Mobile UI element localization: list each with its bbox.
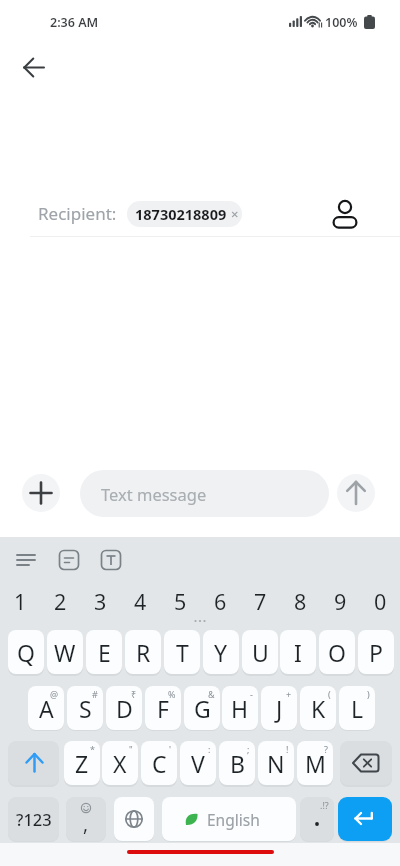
staticText: I: [294, 637, 302, 668]
button[interactable]: .!?: [300, 797, 334, 841]
staticText: ?: [324, 743, 328, 755]
button[interactable]: 2: [40, 587, 80, 615]
button[interactable]: [162, 797, 296, 841]
staticText: %: [168, 688, 176, 700]
staticText: D: [116, 693, 133, 724]
staticText: 3: [94, 587, 107, 615]
button[interactable]: Text message: [80, 470, 329, 517]
staticText: !: [286, 743, 289, 755]
button[interactable]: [18, 56, 52, 80]
staticText: Z: [75, 748, 89, 779]
staticText: S: [79, 693, 92, 724]
staticText: J: [276, 693, 283, 724]
staticText: 5: [174, 587, 187, 615]
button[interactable]: B: [219, 741, 255, 785]
staticText: ': [169, 743, 172, 755]
staticText: 7: [254, 587, 267, 615]
button[interactable]: O: [319, 630, 355, 674]
staticText: &: [208, 688, 215, 700]
staticText: 2:36 AM: [50, 14, 99, 31]
button[interactable]: K: [300, 686, 336, 730]
button[interactable]: Y: [203, 630, 239, 674]
button[interactable]: 3: [80, 587, 120, 615]
staticText: ;: [247, 743, 250, 755]
staticText: U: [252, 637, 269, 668]
button[interactable]: A: [28, 686, 64, 730]
staticText: W: [54, 637, 76, 668]
staticText: Y: [214, 637, 228, 668]
button[interactable]: ?123: [8, 797, 59, 841]
button[interactable]: J: [261, 686, 297, 730]
staticText: ₹: [131, 688, 137, 700]
button[interactable]: G: [184, 686, 220, 730]
staticText: V: [191, 748, 205, 779]
staticText: Q: [17, 637, 35, 668]
staticText: .!?: [320, 799, 329, 811]
staticText: @: [50, 688, 59, 700]
staticText: C: [152, 748, 167, 779]
staticText: Recipient:: [38, 202, 117, 224]
button[interactable]: U: [242, 630, 278, 674]
button[interactable]: [114, 797, 154, 841]
button[interactable]: W: [47, 630, 83, 674]
button[interactable]: R: [125, 630, 161, 674]
button[interactable]: 9: [320, 587, 360, 615]
button[interactable]: M: [297, 741, 333, 785]
button[interactable]: 0: [360, 587, 400, 615]
staticText: 18730218809: [135, 204, 227, 224]
button[interactable]: 8: [280, 587, 320, 615]
button[interactable]: [66, 797, 106, 841]
staticText: X: [113, 748, 127, 779]
button[interactable]: [100, 549, 122, 571]
button[interactable]: [22, 474, 60, 512]
button[interactable]: 5: [160, 587, 200, 615]
button[interactable]: [338, 797, 392, 841]
button[interactable]: [337, 474, 375, 512]
button[interactable]: [340, 741, 392, 785]
button[interactable]: D: [106, 686, 142, 730]
staticText: N: [267, 748, 285, 779]
staticText: 6: [214, 587, 227, 615]
button[interactable]: P: [358, 630, 394, 674]
staticText: E: [98, 637, 111, 668]
staticText: O: [328, 637, 346, 668]
staticText: T: [176, 637, 189, 668]
staticText: ?123: [16, 808, 52, 830]
button[interactable]: [8, 741, 59, 785]
button[interactable]: L: [339, 686, 375, 730]
button[interactable]: [332, 197, 358, 230]
button[interactable]: I: [280, 630, 316, 674]
staticText: P: [369, 637, 383, 668]
staticText: ×: [231, 205, 239, 223]
button[interactable]: Z: [64, 741, 100, 785]
button[interactable]: T: [164, 630, 200, 674]
staticText: 4: [134, 587, 147, 615]
button[interactable]: S: [67, 686, 103, 730]
button[interactable]: V: [180, 741, 216, 785]
button[interactable]: [58, 549, 80, 571]
button[interactable]: Q: [8, 630, 44, 674]
button[interactable]: 18730218809: [127, 201, 242, 227]
button[interactable]: E: [86, 630, 122, 674]
staticText: 1: [14, 587, 27, 615]
button[interactable]: English: [162, 797, 296, 841]
button[interactable]: 4: [120, 587, 160, 615]
staticText: +: [286, 688, 292, 700]
staticText: K: [311, 693, 326, 724]
button[interactable]: 1: [0, 587, 40, 615]
button[interactable]: [16, 549, 38, 571]
staticText: ": [129, 743, 133, 755]
button[interactable]: H: [222, 686, 258, 730]
button[interactable]: N: [258, 741, 294, 785]
staticText: 100%: [325, 14, 358, 31]
staticText: G: [194, 693, 211, 724]
button[interactable]: X: [102, 741, 138, 785]
button[interactable]: F: [145, 686, 181, 730]
button[interactable]: 6: [200, 587, 240, 615]
staticText: (: [328, 688, 331, 700]
staticText: #: [92, 688, 98, 700]
button[interactable]: C: [141, 741, 177, 785]
staticText: ): [367, 688, 370, 700]
button[interactable]: 7: [240, 587, 280, 615]
staticText: L: [351, 693, 364, 724]
